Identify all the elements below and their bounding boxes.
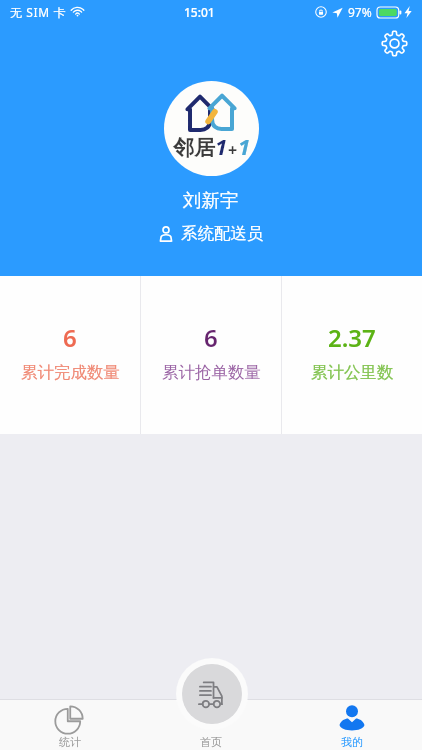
staticText: 1 [238, 131, 251, 161]
staticText: 首页 [200, 735, 222, 749]
staticText: 6 [63, 321, 77, 354]
staticText: + [228, 139, 238, 161]
button[interactable]: 6 [0, 276, 140, 434]
staticText: 累计公里数 [311, 362, 394, 383]
staticText: 累计完成数量 [21, 362, 120, 383]
staticText: 2.37 [328, 321, 376, 354]
staticText: 统计 [59, 735, 81, 749]
staticText: 累计抢单数量 [162, 362, 261, 383]
staticText: 我的 [341, 735, 363, 749]
button[interactable]: Home [140, 699, 281, 750]
staticText: 刘新宇 [183, 189, 239, 212]
staticText: 6 [204, 321, 218, 354]
button[interactable]: Profile [281, 699, 422, 750]
button[interactable]: Home delivery [182, 664, 242, 724]
button[interactable]: 6 [141, 276, 281, 434]
staticText: 无 SIM 卡 [10, 4, 66, 20]
button[interactable]: 2.37 [282, 276, 422, 434]
button[interactable]: Statistics [0, 699, 140, 750]
staticText: 邻居 [173, 135, 215, 161]
button[interactable]: Avatar [164, 81, 259, 176]
staticText: 97% [348, 4, 372, 20]
button[interactable]: Settings [376, 25, 412, 61]
staticText: 系统配送员 [181, 223, 264, 244]
staticText: 15:01 [184, 4, 215, 20]
staticText: 1 [215, 131, 228, 161]
